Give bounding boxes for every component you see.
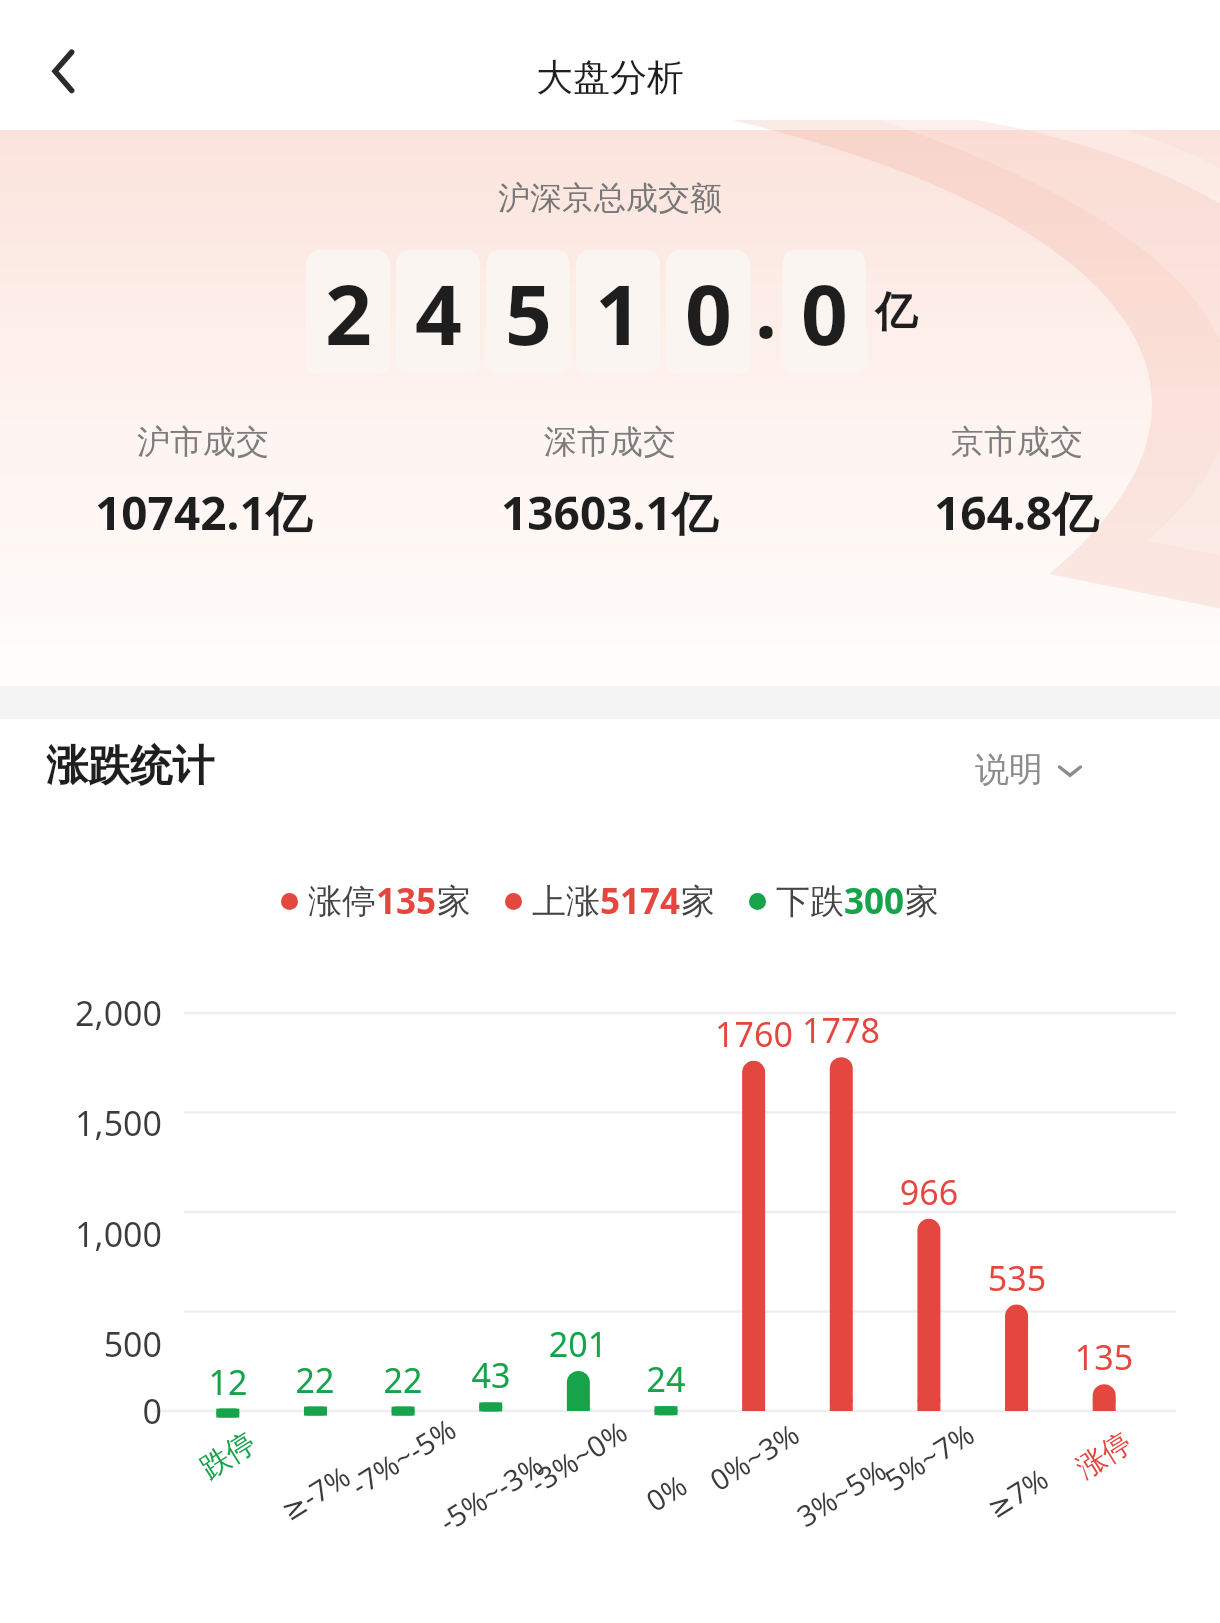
button[interactable]: 下跌 [749,877,939,925]
staticText: 5%~7% [838,1390,1020,1523]
button[interactable]: 涨停 [281,877,471,925]
staticText: 164.8亿 [934,481,1099,544]
staticText: 43 [421,1352,561,1398]
staticText: 300 [844,877,905,925]
staticText: 0 [685,257,732,369]
staticText: ≥-7% [224,1426,406,1559]
staticText: 深市成交 [544,421,676,463]
staticText: 亿 [875,286,917,339]
staticText: 0 [0,1388,162,1434]
staticText: 2 [325,257,372,369]
staticText: 1760 [684,1011,824,1057]
staticText: 5 [505,257,552,369]
staticText: 0%~3% [663,1390,845,1523]
staticText: 沪深京总成交额 [498,178,722,218]
staticText: 家 [905,880,939,923]
staticText: 24 [596,1356,736,1402]
staticText: 大盘分析 [536,54,684,101]
staticText: 1,000 [0,1211,162,1257]
staticText: 2,000 [0,990,162,1036]
staticText: 家 [437,880,471,923]
button[interactable]: 上涨 [505,877,715,925]
staticText: 上涨 [532,880,600,923]
button[interactable]: 京市成交 [813,421,1220,544]
staticText: 13603.1亿 [501,481,718,544]
staticText: 1778 [771,1007,911,1053]
staticText: 0% [575,1426,757,1559]
staticText: 下跌 [776,880,844,923]
staticText: 跌停 [138,1389,318,1522]
staticText: 家 [681,880,715,923]
staticText: 涨跌统计 [46,740,214,793]
staticText: 500 [0,1321,162,1367]
staticText: 22 [245,1357,385,1403]
staticText: . [755,255,777,361]
staticText: 966 [859,1169,999,1215]
staticText: 4 [415,257,462,369]
button[interactable]: 说明 [975,748,1085,791]
staticText: 3%~5% [750,1426,932,1559]
staticText: -7%~-5% [312,1390,494,1523]
staticText: 201 [508,1321,648,1367]
staticText: 说明 [975,748,1043,791]
button[interactable]: 沪市成交 [0,421,406,544]
staticText: -5%~-3% [400,1426,582,1559]
staticText: 1 [595,257,642,369]
button[interactable]: Back [32,38,96,102]
staticText: 135 [1034,1334,1174,1380]
button[interactable]: 深市成交 [406,421,813,544]
staticText: 135 [376,877,437,925]
staticText: 12 [158,1359,298,1405]
staticText: 1,500 [0,1100,162,1146]
staticText: 沪市成交 [137,421,269,463]
staticText: -3%~0% [487,1390,669,1523]
staticText: 京市成交 [951,421,1083,463]
staticText: 涨停 [1014,1389,1194,1522]
staticText: 10742.1亿 [95,481,312,544]
staticText: 5174 [600,877,681,925]
staticText: 535 [947,1255,1087,1301]
staticText: 0 [801,257,848,369]
staticText: 22 [333,1357,473,1403]
staticText: 涨停 [308,880,376,923]
staticText: ≥7% [926,1426,1108,1559]
